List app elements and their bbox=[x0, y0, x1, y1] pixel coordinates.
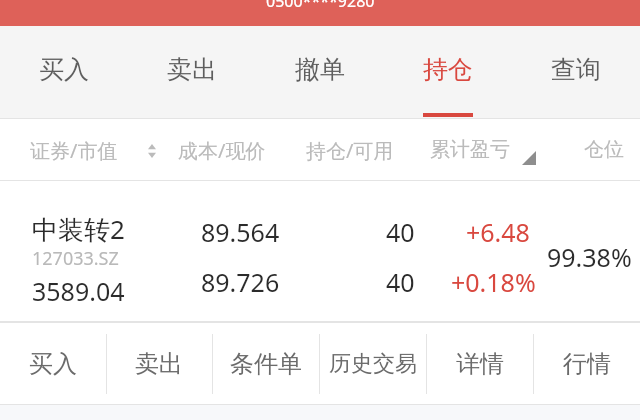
button[interactable]: Sort by cumulative profit bbox=[428, 131, 540, 171]
staticText: 0500****9280 bbox=[266, 0, 375, 12]
staticText: 查询 bbox=[551, 54, 601, 85]
button[interactable]: 查询 bbox=[512, 26, 640, 119]
staticText: 89.726 bbox=[201, 265, 280, 299]
staticText: 卖出 bbox=[135, 349, 183, 379]
staticText: 详情 bbox=[456, 349, 504, 379]
button[interactable]: 持仓 bbox=[384, 26, 512, 119]
staticText: 89.564 bbox=[201, 215, 280, 249]
staticText: 累计盈亏 bbox=[430, 137, 510, 162]
staticText: 撤单 bbox=[295, 54, 345, 85]
button[interactable]: 条件单 bbox=[212, 322, 319, 405]
staticText: 条件单 bbox=[230, 349, 302, 379]
button[interactable]: Sort by security / market value bbox=[26, 131, 164, 169]
button[interactable]: 撤单 bbox=[256, 26, 384, 119]
staticText: 买入 bbox=[39, 54, 89, 85]
staticText: 卖出 bbox=[167, 54, 217, 85]
button[interactable]: 持仓/可用 bbox=[306, 137, 394, 164]
button[interactable]: 仓位 bbox=[584, 137, 624, 162]
button[interactable]: 成本/现价 bbox=[178, 137, 266, 164]
staticText: 证券/市值 bbox=[30, 137, 118, 164]
staticText: 99.38% bbox=[547, 240, 632, 274]
button[interactable]: 卖出 bbox=[106, 322, 212, 405]
staticText: 持仓 bbox=[423, 54, 473, 85]
staticText: 40 bbox=[386, 265, 415, 299]
staticText: 历史交易 bbox=[329, 350, 417, 378]
button[interactable]: 买入 bbox=[0, 322, 106, 405]
staticText: +0.18% bbox=[451, 265, 536, 299]
staticText: 买入 bbox=[29, 349, 77, 379]
staticText: +6.48 bbox=[466, 215, 530, 249]
button[interactable]: 中装转2 bbox=[0, 181, 640, 322]
staticText: 行情 bbox=[563, 349, 611, 379]
button[interactable]: 详情 bbox=[426, 322, 533, 405]
button[interactable]: 历史交易 bbox=[319, 322, 426, 405]
button[interactable]: 买入 bbox=[0, 26, 128, 119]
staticText: 127033.SZ bbox=[32, 246, 119, 271]
staticText: 3589.04 bbox=[32, 274, 125, 308]
staticText: 40 bbox=[386, 215, 415, 249]
button[interactable]: 行情 bbox=[533, 322, 640, 405]
staticText: 中装转2 bbox=[32, 211, 125, 247]
button[interactable]: 卖出 bbox=[128, 26, 256, 119]
